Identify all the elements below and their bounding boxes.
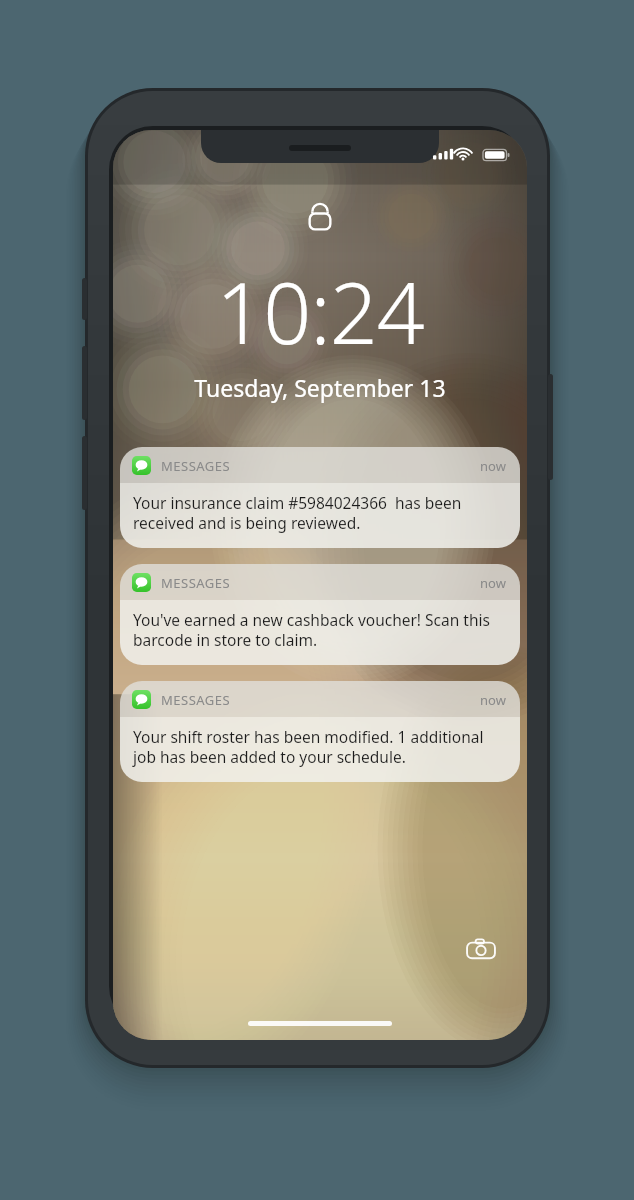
- staticText: now: [480, 691, 506, 709]
- staticText: 10:24: [216, 254, 424, 368]
- staticText: now: [480, 574, 506, 592]
- button[interactable]: MESSAGES: [120, 681, 520, 782]
- staticText: Your shift roster has been modified. 1 a…: [133, 726, 506, 768]
- button[interactable]: MESSAGES: [120, 564, 520, 665]
- staticText: You've earned a new cashback voucher! Sc…: [133, 609, 506, 651]
- staticText: Tuesday, September 13: [194, 372, 446, 403]
- staticText: MESSAGES: [161, 691, 231, 709]
- staticText: Your insurance claim #5984024366 has bee…: [133, 492, 506, 534]
- staticText: now: [480, 457, 506, 475]
- other: Locked: [305, 200, 335, 234]
- button[interactable]: MESSAGES: [120, 447, 520, 548]
- button[interactable]: Camera: [459, 928, 503, 972]
- staticText: MESSAGES: [161, 574, 231, 592]
- staticText: MESSAGES: [161, 457, 231, 475]
